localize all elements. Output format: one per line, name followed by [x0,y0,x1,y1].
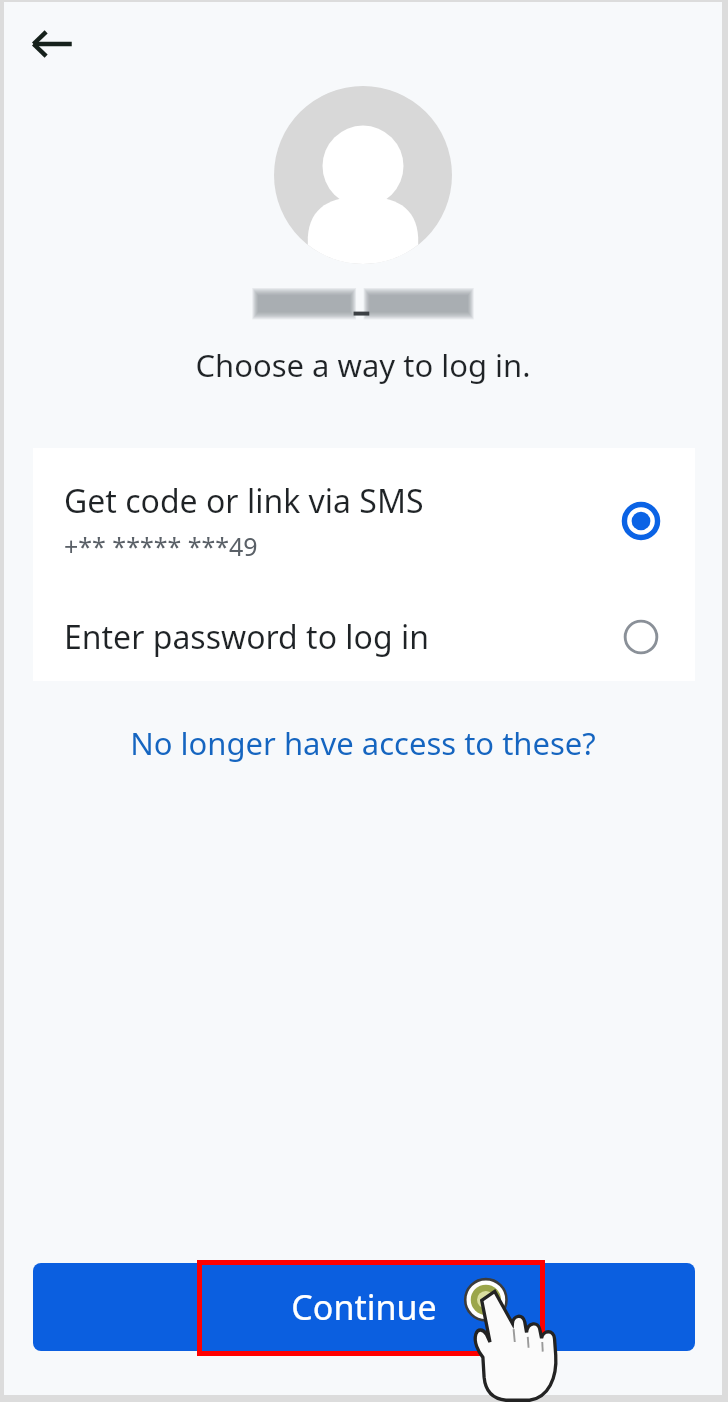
button[interactable]: Back [16,8,88,80]
button[interactable]: Continue [33,1263,695,1351]
button[interactable]: Get code or link via SMS [33,448,695,593]
staticText: Continue [291,1284,437,1330]
staticText: Enter password to log in [64,615,429,659]
staticText: No longer have access to these? [130,722,596,764]
button[interactable]: No longer have access to these? [114,716,612,770]
button[interactable]: Enter password to log in [33,593,695,681]
button[interactable]: Selected option [617,497,665,545]
staticText: +** ***** ***49 [64,529,258,563]
staticText: Get code or link via SMS [64,479,424,523]
staticText: Choose a way to log in. [195,344,531,386]
button[interactable]: Option [617,613,665,661]
